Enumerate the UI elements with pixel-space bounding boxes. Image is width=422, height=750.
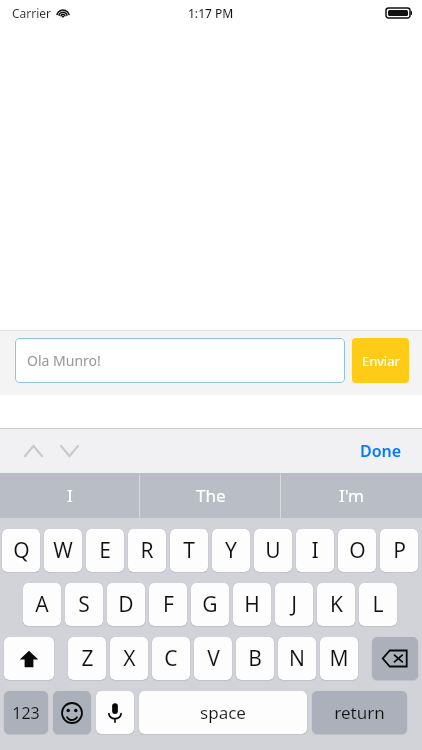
button[interactable]: Done: [354, 434, 408, 468]
button[interactable]: return: [312, 691, 407, 734]
button[interactable]: Shift: [4, 637, 54, 680]
button[interactable]: U: [254, 529, 292, 572]
button[interactable]: space: [139, 691, 307, 734]
button[interactable]: A: [23, 583, 61, 626]
staticText: space: [200, 701, 246, 724]
staticText: T: [183, 536, 195, 565]
staticText: Carrier: [12, 5, 52, 21]
staticText: S: [78, 590, 90, 619]
button[interactable]: Y: [212, 529, 250, 572]
staticText: D: [118, 590, 134, 619]
button[interactable]: X: [110, 637, 148, 680]
staticText: V: [207, 644, 220, 673]
staticText: N: [289, 644, 305, 673]
button[interactable]: Dictation: [96, 691, 134, 734]
staticText: A: [35, 590, 49, 619]
staticText: Ola Munro!: [27, 351, 101, 370]
button[interactable]: Z: [68, 637, 106, 680]
button[interactable]: Emoji: [53, 691, 91, 734]
staticText: Enviar: [362, 352, 400, 370]
staticText: O: [349, 536, 366, 565]
staticText: R: [140, 536, 154, 565]
button[interactable]: C: [152, 637, 190, 680]
button[interactable]: Backspace: [372, 637, 418, 680]
staticText: Y: [225, 536, 237, 565]
staticText: X: [123, 644, 136, 673]
button[interactable]: B: [236, 637, 274, 680]
button[interactable]: V: [194, 637, 232, 680]
staticText: W: [53, 536, 73, 565]
staticText: Q: [13, 536, 30, 565]
button[interactable]: I: [0, 473, 140, 518]
button[interactable]: K: [317, 583, 355, 626]
staticText: return: [334, 701, 385, 724]
staticText: E: [99, 536, 111, 565]
staticText: K: [330, 590, 343, 619]
button[interactable]: W: [44, 529, 82, 572]
button[interactable]: I: [296, 529, 334, 572]
staticText: The: [196, 484, 226, 507]
staticText: B: [248, 644, 262, 673]
other: Battery full: [386, 7, 412, 19]
staticText: 123: [12, 702, 40, 724]
button[interactable]: O: [338, 529, 376, 572]
staticText: J: [291, 590, 297, 619]
staticText: 1:17 PM: [188, 5, 234, 21]
staticText: U: [265, 536, 281, 565]
button[interactable]: H: [233, 583, 271, 626]
staticText: Z: [81, 644, 94, 673]
button[interactable]: Next field: [54, 436, 84, 466]
button[interactable]: I'm: [281, 473, 422, 518]
button[interactable]: L: [359, 583, 397, 626]
button[interactable]: 123: [4, 691, 48, 734]
button[interactable]: Enviar: [352, 338, 409, 383]
button[interactable]: F: [149, 583, 187, 626]
button[interactable]: R: [128, 529, 166, 572]
button[interactable]: E: [86, 529, 124, 572]
button[interactable]: Previous field: [18, 436, 48, 466]
staticText: I'm: [339, 484, 364, 507]
staticText: M: [329, 644, 349, 673]
button[interactable]: The: [140, 473, 281, 518]
button[interactable]: D: [107, 583, 145, 626]
staticText: H: [244, 590, 260, 619]
button[interactable]: Q: [2, 529, 40, 572]
button[interactable]: Ola Munro!: [15, 338, 345, 383]
button[interactable]: P: [380, 529, 418, 572]
staticText: C: [164, 644, 178, 673]
button[interactable]: T: [170, 529, 208, 572]
staticText: G: [202, 590, 218, 619]
button[interactable]: N: [278, 637, 316, 680]
button[interactable]: M: [320, 637, 358, 680]
button[interactable]: S: [65, 583, 103, 626]
staticText: Done: [360, 440, 402, 462]
staticText: I: [311, 536, 319, 565]
staticText: F: [163, 590, 174, 619]
staticText: L: [372, 590, 384, 619]
staticText: I: [67, 484, 73, 507]
staticText: P: [393, 536, 406, 565]
button[interactable]: J: [275, 583, 313, 626]
button[interactable]: G: [191, 583, 229, 626]
